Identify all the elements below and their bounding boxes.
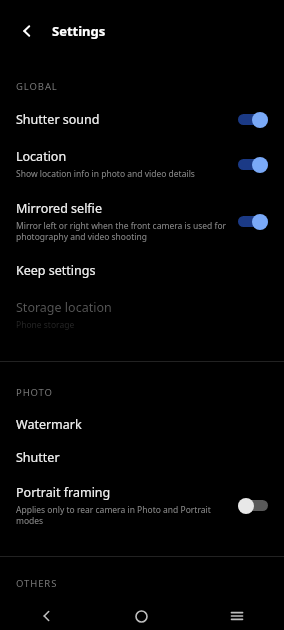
button[interactable]: Home	[94, 602, 189, 630]
button[interactable]: Shutter sound	[0, 107, 284, 142]
button[interactable]: Portrait framing	[0, 479, 284, 538]
staticText: Storage location	[16, 299, 112, 316]
staticText: GLOBAL	[16, 80, 58, 93]
staticText: Watermark	[16, 416, 82, 433]
staticText: Settings	[52, 22, 106, 40]
staticText: Applies only to rear camera in Photo and…	[16, 504, 230, 526]
button[interactable]: Mirrored selfie	[0, 194, 284, 254]
staticText: Phone storage	[16, 319, 75, 331]
button[interactable]: Back	[12, 16, 42, 46]
staticText: Mirror left or right when the front came…	[16, 220, 230, 242]
staticText: PHOTO	[16, 386, 53, 399]
button[interactable]: Location toggle	[238, 156, 268, 173]
button[interactable]: Shutter sound toggle	[238, 111, 268, 128]
button[interactable]: Location	[0, 142, 284, 194]
button[interactable]: Watermark	[0, 413, 284, 446]
button[interactable]: Keep settings	[0, 254, 284, 291]
button[interactable]: Storage location	[0, 291, 284, 343]
staticText: OTHERS	[16, 577, 58, 590]
staticText: Shutter sound	[16, 111, 100, 128]
staticText: Mirrored selfie	[16, 200, 102, 217]
button[interactable]: Mirrored selfie toggle	[238, 213, 268, 230]
button[interactable]: Back	[0, 602, 94, 630]
staticText: Keep settings	[16, 262, 96, 279]
staticText: Location	[16, 148, 67, 165]
button[interactable]: Recent apps	[189, 602, 284, 630]
staticText: Show location info in photo and video de…	[16, 168, 195, 180]
staticText: Privacy Statement	[16, 607, 122, 617]
button[interactable]: Shutter	[0, 446, 284, 479]
staticText: Shutter	[16, 449, 60, 466]
button[interactable]: Privacy Statement	[0, 604, 284, 630]
button[interactable]: Portrait framing toggle	[238, 497, 268, 514]
staticText: Portrait framing	[16, 484, 111, 501]
